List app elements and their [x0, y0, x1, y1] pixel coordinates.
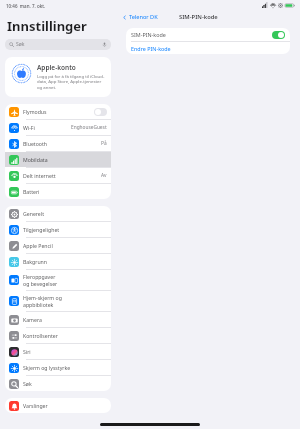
button[interactable]: Telenor DK: [120, 12, 160, 22]
staticText: Varslinger: [23, 402, 48, 409]
staticText: og bevegelser: [23, 280, 58, 287]
staticText: Kontrollsenter: [23, 332, 58, 339]
staticText: Wi-Fi: [23, 124, 35, 131]
staticText: Søk: [16, 41, 25, 48]
button[interactable]: Endre PIN-kode: [126, 42, 290, 54]
staticText: Kamera: [23, 316, 42, 323]
button[interactable]: SIM-PIN-kode: [126, 28, 290, 41]
staticText: SIM-PIN-kode: [131, 31, 166, 38]
button[interactable]: Flymodus: [5, 104, 111, 119]
staticText: Apple Pencil: [23, 242, 53, 249]
staticText: Logg på for å få tilgang til iCloud-data…: [37, 73, 105, 91]
staticText: Apple-konto: [37, 63, 76, 72]
staticText: Mobildata: [23, 156, 48, 163]
button[interactable]: Generelt: [5, 206, 111, 221]
button[interactable]: Skjerm og lysstyrke: [5, 360, 111, 375]
button[interactable]: Kontrollsenter: [5, 328, 111, 343]
staticText: Bakgrunn: [23, 258, 48, 265]
staticText: Generelt: [23, 210, 45, 217]
staticText: Av: [101, 172, 107, 179]
button[interactable]: Hjem-skjerm og: [5, 291, 111, 311]
button[interactable]: Siri: [5, 344, 111, 359]
button[interactable]: Søk: [5, 376, 111, 391]
staticText: Delt internett: [23, 172, 56, 179]
button[interactable]: Batteri: [5, 184, 111, 199]
staticText: EnghouseGuest: [71, 124, 107, 131]
button[interactable]: Fleroppgaver: [5, 270, 111, 290]
staticText: Bluetooth: [23, 140, 48, 147]
button[interactable]: Apple Pencil: [5, 238, 111, 253]
staticText: Skjerm og lysstyrke: [23, 364, 71, 371]
button[interactable]: Apple-konto: [5, 57, 111, 97]
staticText: Innstillinger: [7, 17, 87, 35]
staticText: SIM-PIN-kode: [179, 13, 218, 21]
button[interactable]: Tilgjengelighet: [5, 222, 111, 237]
staticText: Hjem-skjerm og: [23, 294, 62, 301]
staticText: Siri: [23, 348, 31, 355]
staticText: 10:46 man. 7. okt.: [6, 3, 46, 9]
button[interactable]: Delt internett: [5, 168, 111, 183]
button[interactable]: Kamera: [5, 312, 111, 327]
staticText: På: [101, 140, 107, 147]
button[interactable]: Mobildata: [5, 152, 111, 167]
staticText: appbibliotek: [23, 301, 54, 308]
button[interactable]: Wi-Fi: [5, 120, 111, 135]
staticText: Tilgjengelighet: [23, 226, 60, 233]
button[interactable]: Bluetooth: [5, 136, 111, 151]
staticText: Flymodus: [23, 108, 47, 115]
staticText: Telenor DK: [129, 13, 158, 21]
button[interactable]: Søk: [5, 39, 111, 50]
button[interactable]: Varslinger: [5, 398, 111, 413]
staticText: Endre PIN-kode: [131, 45, 171, 52]
staticText: Søk: [23, 380, 32, 387]
button[interactable]: Bakgrunn: [5, 254, 111, 269]
staticText: Batteri: [23, 188, 40, 195]
staticText: Fleroppgaver: [23, 273, 56, 280]
